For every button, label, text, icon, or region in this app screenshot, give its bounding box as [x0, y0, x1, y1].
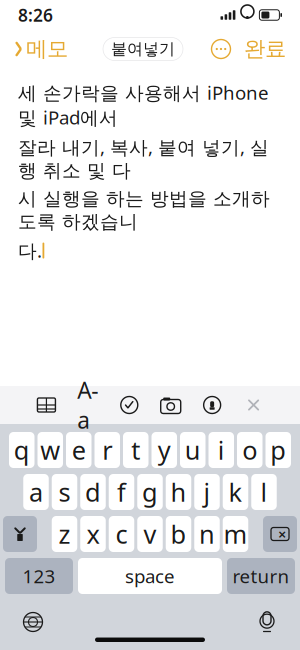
button[interactable]: Camera: [160, 396, 182, 414]
button[interactable]: r: [94, 432, 120, 468]
button[interactable]: j: [194, 474, 220, 510]
button[interactable]: 메모: [14, 30, 76, 68]
staticText: w: [40, 433, 60, 467]
staticText: j: [203, 475, 210, 509]
button[interactable]: z: [52, 516, 77, 552]
staticText: a: [29, 475, 43, 509]
button[interactable]: t: [123, 432, 148, 468]
staticText: 세 손가락을 사용해서 iPhone 및 iPad에서: [18, 80, 269, 130]
staticText: c: [115, 517, 127, 551]
button[interactable]: Delete: [263, 516, 297, 552]
button[interactable]: Shift: [3, 516, 37, 552]
staticText: v: [143, 517, 156, 551]
button[interactable]: l: [251, 474, 277, 510]
button[interactable]: space: [78, 558, 222, 594]
staticText: d: [85, 475, 101, 509]
staticText: Aa: [77, 375, 98, 435]
staticText: k: [228, 475, 242, 509]
staticText: ×: [278, 524, 286, 544]
staticText: p: [270, 433, 286, 467]
button[interactable]: Switch keyboard language: [22, 611, 44, 633]
staticText: e: [72, 433, 86, 467]
button[interactable]: g: [137, 474, 163, 510]
button[interactable]: p: [265, 432, 291, 468]
button[interactable]: 붙여넣기: [103, 37, 183, 60]
staticText: 메모: [26, 36, 68, 62]
staticText: 다.: [18, 238, 42, 263]
button[interactable]: c: [109, 516, 134, 552]
button[interactable]: v: [137, 516, 163, 552]
button[interactable]: b: [166, 516, 191, 552]
button[interactable]: Close keyboard: [243, 396, 265, 414]
staticText: 잘라 내기, 복사, 붙여 넣기, 실행 취소 및 다: [18, 135, 269, 182]
button[interactable]: i: [208, 432, 234, 468]
staticText: y: [158, 433, 171, 467]
button[interactable]: m: [223, 516, 248, 552]
button[interactable]: w: [37, 432, 63, 468]
staticText: 시 실행을 하는 방법을 소개하도록 하겠습니: [18, 187, 270, 233]
staticText: g: [142, 475, 158, 509]
button[interactable]: e: [66, 432, 91, 468]
staticText: h: [170, 475, 186, 509]
staticText: n: [199, 517, 215, 551]
staticText: return: [232, 564, 289, 588]
button[interactable]: k: [223, 474, 248, 510]
button[interactable]: Dictation: [256, 610, 278, 634]
button[interactable]: Checklist: [118, 396, 140, 414]
button[interactable]: f: [109, 474, 134, 510]
staticText: r: [102, 433, 112, 467]
staticText: 완료: [244, 36, 286, 62]
staticText: o: [242, 433, 257, 467]
button[interactable]: u: [180, 432, 205, 468]
button[interactable]: More options: [210, 38, 232, 60]
button[interactable]: q: [9, 432, 34, 468]
staticText: t: [131, 433, 140, 467]
button[interactable]: Insert table: [35, 396, 57, 414]
staticText: space: [125, 564, 175, 588]
staticText: s: [58, 475, 70, 509]
button[interactable]: a: [23, 474, 49, 510]
staticText: f: [117, 475, 126, 509]
staticText: q: [14, 433, 30, 467]
button[interactable]: h: [166, 474, 191, 510]
staticText: l: [260, 475, 267, 509]
button[interactable]: 완료: [244, 32, 286, 66]
button[interactable]: y: [151, 432, 177, 468]
staticText: x: [86, 517, 99, 551]
staticText: 붙여넣기: [111, 39, 175, 59]
staticText: i: [218, 433, 225, 467]
button[interactable]: Markup: [201, 396, 223, 414]
staticText: 123: [22, 564, 55, 588]
button[interactable]: o: [237, 432, 262, 468]
button[interactable]: d: [80, 474, 106, 510]
button[interactable]: 123: [5, 558, 73, 594]
button[interactable]: return: [227, 558, 295, 594]
button[interactable]: Format text: [77, 396, 99, 414]
button[interactable]: n: [194, 516, 220, 552]
staticText: m: [223, 517, 247, 551]
staticText: 8:26: [18, 3, 53, 26]
button[interactable]: x: [80, 516, 106, 552]
staticText: u: [185, 433, 201, 467]
staticText: b: [170, 517, 186, 551]
staticText: z: [58, 517, 70, 551]
button[interactable]: s: [52, 474, 77, 510]
